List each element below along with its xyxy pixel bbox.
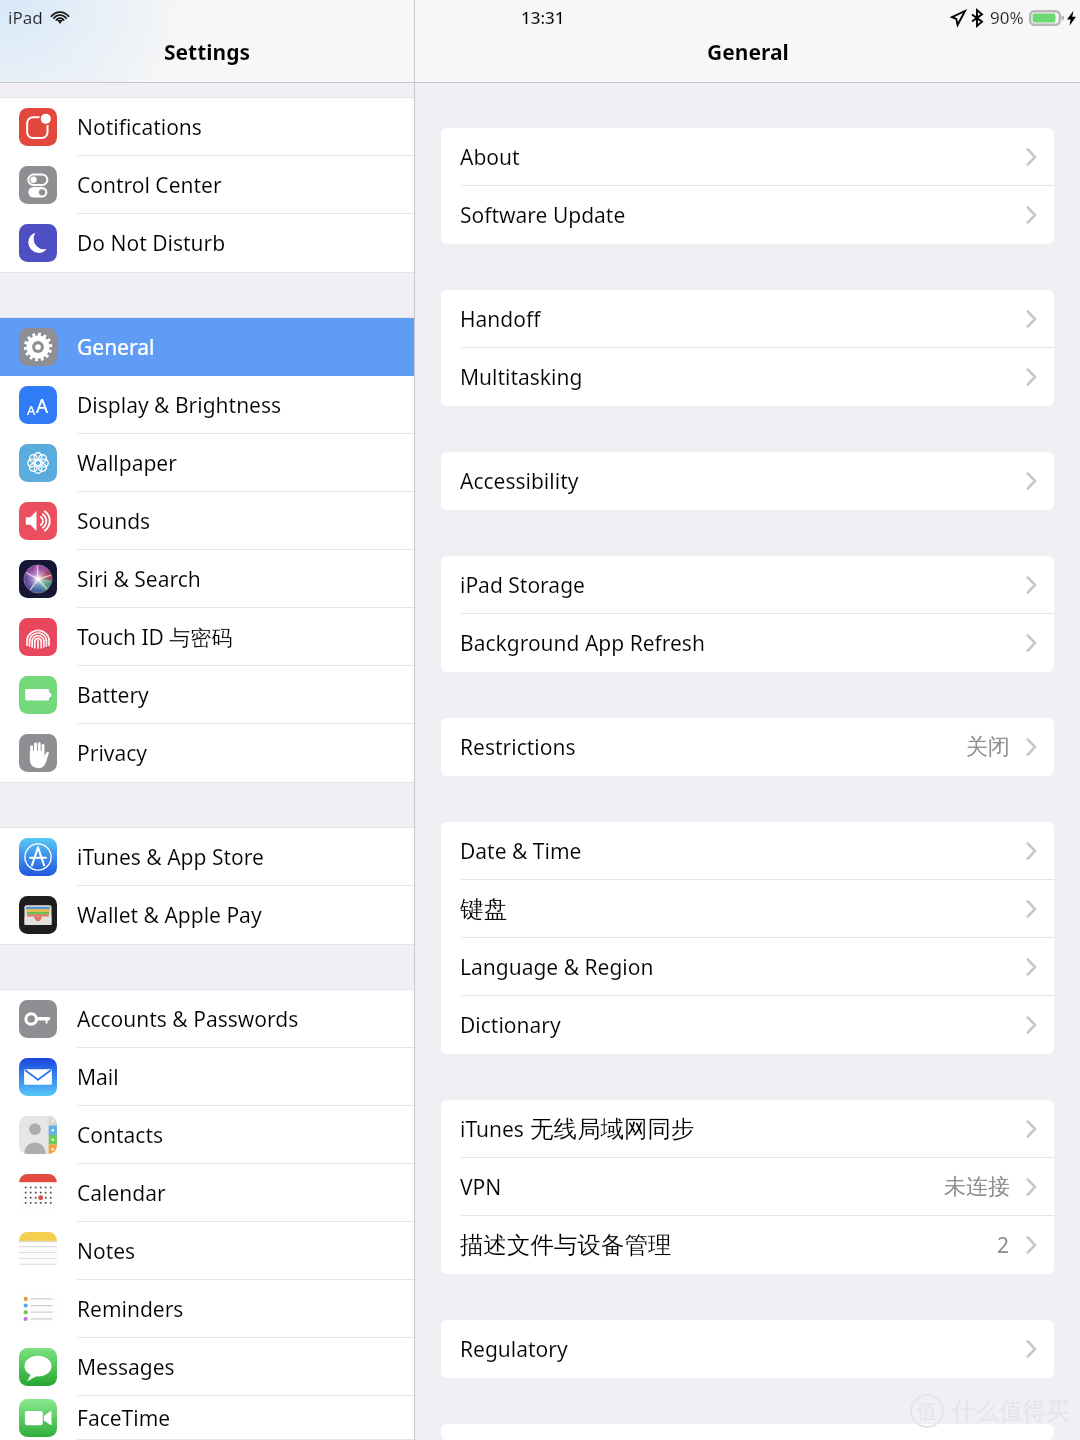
- button[interactable]: Mail: [0, 1048, 414, 1106]
- button[interactable]: Touch ID 与密码: [0, 608, 414, 666]
- staticText: Contacts: [77, 1121, 164, 1150]
- button[interactable]: Multitasking: [441, 348, 1054, 406]
- button[interactable]: Handoff: [441, 290, 1054, 348]
- button[interactable]: 描述文件与设备管理: [441, 1216, 1054, 1274]
- staticText: Control Center: [77, 171, 222, 200]
- staticText: Mail: [77, 1063, 119, 1092]
- button[interactable]: Battery: [0, 666, 414, 724]
- staticText: Calendar: [77, 1179, 166, 1208]
- staticText: Privacy: [77, 739, 148, 768]
- staticText: 值: [917, 1399, 937, 1424]
- button[interactable]: Software Update: [441, 186, 1054, 244]
- staticText: Dictionary: [460, 1011, 561, 1040]
- staticText: Restrictions: [460, 733, 576, 762]
- button[interactable]: Wallet & Apple Pay: [0, 886, 414, 944]
- staticText: General: [77, 333, 155, 362]
- button[interactable]: Regulatory: [441, 1320, 1054, 1378]
- staticText: iTunes: [460, 1115, 530, 1144]
- staticText: Language & Region: [460, 953, 654, 982]
- staticText: 什么值得买: [952, 1396, 1070, 1426]
- staticText: A: [36, 393, 49, 419]
- staticText: 2: [997, 1231, 1010, 1260]
- staticText: Siri & Search: [77, 565, 201, 594]
- button[interactable]: iTunes: [441, 1100, 1054, 1158]
- staticText: Battery: [77, 681, 149, 710]
- staticText: Background App Refresh: [460, 629, 705, 658]
- button[interactable]: Sounds: [0, 492, 414, 550]
- staticText: Multitasking: [460, 363, 583, 392]
- staticText: Touch ID 与密码: [77, 623, 233, 652]
- staticText: Notifications: [77, 113, 202, 142]
- staticText: 13:31: [521, 6, 565, 29]
- button[interactable]: FaceTime: [0, 1396, 414, 1440]
- button[interactable]: Accounts & Passwords: [0, 990, 414, 1048]
- staticText: About: [460, 143, 520, 172]
- button[interactable]: 键盘: [441, 880, 1054, 938]
- staticText: 90%: [990, 6, 1024, 29]
- button[interactable]: iPad Storage: [441, 556, 1054, 614]
- staticText: Reminders: [77, 1295, 184, 1324]
- staticText: iPad Storage: [460, 571, 585, 600]
- button[interactable]: Contacts: [0, 1106, 414, 1164]
- button[interactable]: Dictionary: [441, 996, 1054, 1054]
- button[interactable]: Notes: [0, 1222, 414, 1280]
- button[interactable]: Background App Refresh: [441, 614, 1054, 672]
- button[interactable]: Privacy: [0, 724, 414, 782]
- button[interactable]: Wallpaper: [0, 434, 414, 492]
- button[interactable]: Status: location, bluetooth, battery 90%…: [952, 6, 1076, 29]
- button[interactable]: Control Center: [0, 156, 414, 214]
- staticText: General: [707, 38, 789, 67]
- staticText: Do Not Disturb: [77, 229, 226, 258]
- staticText: Wallet & Apple Pay: [77, 901, 262, 930]
- staticText: 键盘: [460, 894, 507, 924]
- button[interactable]: Date & Time: [441, 822, 1054, 880]
- staticText: Sounds: [77, 507, 151, 536]
- button[interactable]: Do Not Disturb: [0, 214, 414, 272]
- staticText: Handoff: [460, 305, 541, 334]
- staticText: Notes: [77, 1237, 136, 1266]
- staticText: Software Update: [460, 201, 626, 230]
- button[interactable]: iTunes & App Store: [0, 828, 414, 886]
- staticText: FaceTime: [77, 1404, 171, 1433]
- button[interactable]: Language & Region: [441, 938, 1054, 996]
- staticText: 未连接: [944, 1173, 1010, 1201]
- button[interactable]: Accessibility: [441, 452, 1054, 510]
- button[interactable]: Siri & Search: [0, 550, 414, 608]
- staticText: Accounts & Passwords: [77, 1005, 299, 1034]
- button[interactable]: A: [0, 376, 414, 434]
- staticText: 关闭: [966, 733, 1010, 761]
- staticText: Settings: [164, 38, 251, 67]
- staticText: Regulatory: [460, 1335, 568, 1364]
- button[interactable]: About: [441, 128, 1054, 186]
- staticText: 描述文件与设备管理: [460, 1230, 672, 1260]
- button[interactable]: Calendar: [0, 1164, 414, 1222]
- button[interactable]: Messages: [0, 1338, 414, 1396]
- staticText: iPad: [8, 6, 43, 29]
- staticText: VPN: [460, 1173, 502, 1202]
- staticText: Date & Time: [460, 837, 582, 866]
- staticText: Accessibility: [460, 467, 579, 496]
- button[interactable]: Reminders: [0, 1280, 414, 1338]
- staticText: Display & Brightness: [77, 391, 282, 420]
- button[interactable]: Notifications: [0, 98, 414, 156]
- button[interactable]: Restrictions: [441, 718, 1054, 776]
- staticText: 无线局域网同步: [530, 1114, 695, 1144]
- staticText: Wallpaper: [77, 449, 177, 478]
- staticText: A: [27, 401, 36, 419]
- staticText: iTunes & App Store: [77, 843, 264, 872]
- button[interactable]: General: [0, 318, 414, 376]
- staticText: Messages: [77, 1353, 175, 1382]
- button[interactable]: VPN: [441, 1158, 1054, 1216]
